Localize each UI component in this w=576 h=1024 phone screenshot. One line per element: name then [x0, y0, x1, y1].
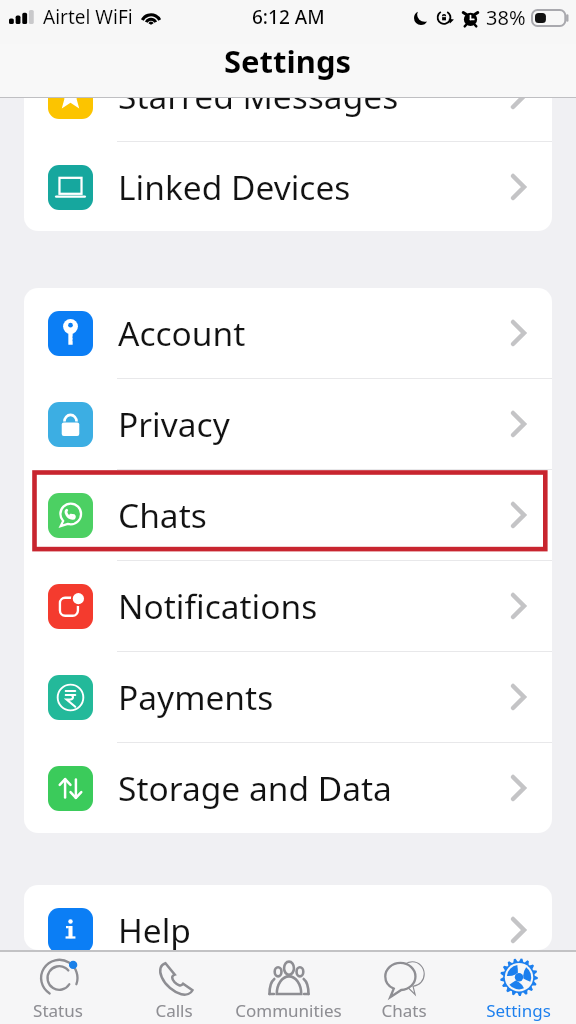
staticText: Notifications	[118, 583, 318, 629]
button[interactable]: Notifications	[24, 561, 552, 651]
staticText: Payments	[118, 674, 274, 720]
staticText: Privacy	[118, 401, 230, 447]
button[interactable]: Help	[24, 885, 552, 950]
button[interactable]: Chats	[24, 470, 552, 560]
staticText: Linked Devices	[118, 164, 351, 210]
staticText: Calls	[155, 999, 193, 1022]
button[interactable]: Communities	[231, 952, 346, 1024]
button[interactable]: Status	[0, 952, 116, 1024]
button[interactable]: Payments	[24, 652, 552, 742]
staticText: Chats	[381, 999, 427, 1022]
staticText: Communities	[235, 999, 342, 1022]
staticText: 38%	[486, 4, 526, 31]
staticText: Chats	[118, 492, 207, 538]
button[interactable]: Account	[24, 288, 552, 378]
button[interactable]: Calls	[116, 952, 231, 1024]
button[interactable]: Privacy	[24, 379, 552, 469]
staticText: 6:12 AM	[252, 4, 325, 30]
staticText: Account	[118, 310, 246, 356]
button[interactable]: Linked Devices	[24, 142, 552, 231]
staticText: Starred Messages	[118, 98, 399, 119]
button[interactable]: Storage and Data	[24, 743, 552, 833]
button[interactable]: Settings	[461, 952, 576, 1024]
staticText: Settings	[224, 40, 352, 82]
staticText: Airtel WiFi	[43, 4, 133, 30]
staticText: Status	[33, 999, 83, 1022]
staticText: Help	[118, 907, 191, 950]
button[interactable]: Starred Messages	[24, 98, 552, 141]
staticText: Storage and Data	[118, 765, 392, 811]
button[interactable]: Chats	[346, 952, 461, 1024]
staticText: Settings	[486, 999, 551, 1022]
